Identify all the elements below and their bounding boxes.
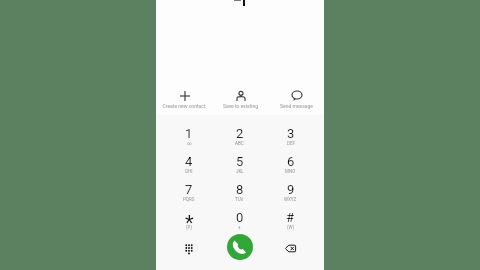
staticText: ∞ bbox=[187, 141, 192, 146]
button[interactable]: 7 bbox=[164, 171, 214, 199]
staticText: + bbox=[238, 225, 241, 230]
staticText: 5 bbox=[236, 154, 244, 169]
button[interactable]: # bbox=[265, 199, 316, 227]
staticText: 4 bbox=[185, 154, 193, 169]
button[interactable]: 5 bbox=[214, 143, 265, 171]
staticText: PQRS bbox=[183, 197, 195, 202]
button[interactable]: 0 bbox=[214, 199, 265, 227]
staticText: # bbox=[286, 210, 295, 225]
staticText: 8 bbox=[236, 182, 244, 197]
button[interactable]: Backspace bbox=[265, 227, 316, 270]
staticText: 3 bbox=[287, 126, 295, 141]
button[interactable]: 8 bbox=[214, 171, 265, 199]
staticText: * bbox=[185, 211, 194, 234]
staticText: MNO bbox=[285, 169, 296, 174]
staticText: 6 bbox=[287, 154, 295, 169]
button[interactable]: Show keypad bbox=[164, 227, 214, 270]
staticText: ABC bbox=[235, 141, 244, 146]
staticText: 1 bbox=[185, 126, 193, 141]
button[interactable]: 6 bbox=[265, 143, 316, 171]
button[interactable]: 2 bbox=[214, 115, 265, 143]
button[interactable]: 3 bbox=[265, 115, 316, 143]
staticText: (P) bbox=[186, 225, 192, 230]
staticText: 2 bbox=[236, 126, 244, 141]
staticText: DEF bbox=[287, 141, 295, 146]
staticText: Create new contact bbox=[162, 103, 206, 109]
button[interactable]: Create new contact bbox=[156, 90, 212, 112]
staticText: JKL bbox=[236, 169, 244, 174]
button[interactable]: 4 bbox=[164, 143, 214, 171]
staticText: (W) bbox=[287, 225, 295, 230]
staticText: Save to existing bbox=[223, 103, 258, 109]
button[interactable]: Call bbox=[227, 234, 253, 260]
staticText: Send message bbox=[280, 103, 313, 109]
staticText: 0 bbox=[236, 210, 244, 225]
button[interactable]: 9 bbox=[265, 171, 316, 199]
staticText: GHI bbox=[185, 169, 193, 174]
button[interactable]: Save to existing bbox=[212, 90, 268, 112]
button[interactable]: Send message bbox=[268, 90, 324, 112]
staticText: WXYZ bbox=[284, 197, 297, 202]
button[interactable]: * bbox=[164, 199, 214, 227]
staticText: TUV bbox=[235, 197, 244, 202]
staticText: 9 bbox=[287, 182, 295, 197]
staticText: 7 bbox=[185, 182, 193, 197]
button[interactable]: 1 bbox=[164, 115, 214, 143]
